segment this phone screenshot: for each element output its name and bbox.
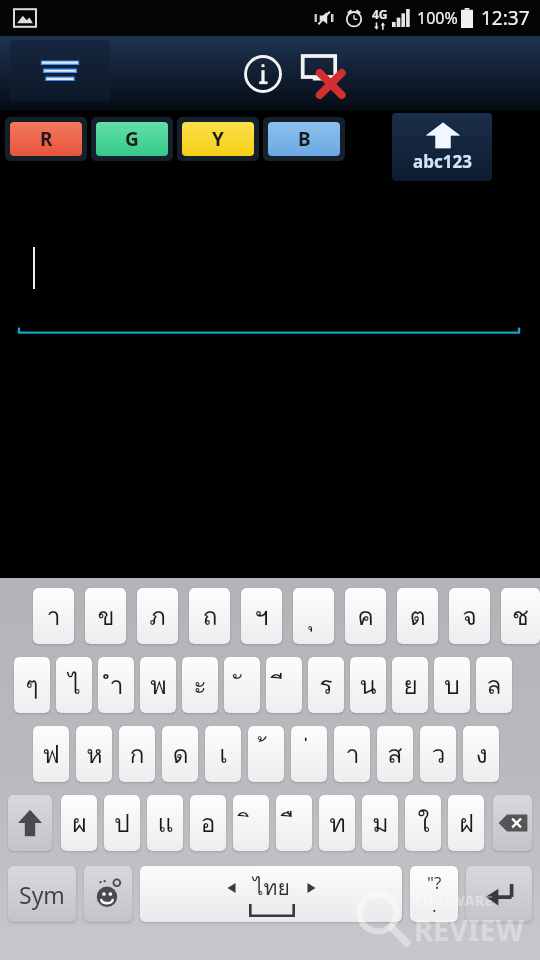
staticText: 12:37 [481, 5, 530, 31]
staticText: ป [114, 803, 130, 843]
staticText: ฝ [459, 803, 474, 843]
button[interactable]: ้ [248, 726, 284, 782]
staticText: ไทย [253, 871, 290, 904]
staticText: า [46, 596, 61, 636]
staticText: ใ [417, 803, 430, 843]
button[interactable]: อ [190, 795, 226, 851]
staticText: พ [150, 665, 167, 705]
button[interactable]: ย [392, 657, 428, 713]
button[interactable]: ฯ [241, 588, 282, 644]
button[interactable]: น [350, 657, 386, 713]
staticText: ำ [109, 665, 124, 705]
button[interactable]: B [263, 117, 345, 161]
staticText: ฟ [42, 734, 60, 774]
staticText: ล [486, 665, 502, 705]
button[interactable]: ิ [233, 795, 269, 851]
staticText: G [125, 126, 139, 152]
staticText: แ [157, 803, 174, 843]
button[interactable]: พ [140, 657, 176, 713]
staticText: Sym [19, 879, 65, 910]
staticText: "? [427, 871, 442, 894]
staticText: ค [357, 596, 374, 636]
button[interactable]: ว [420, 726, 456, 782]
button[interactable]: ใ [405, 795, 441, 851]
staticText: ะ [193, 665, 207, 705]
button[interactable]: R [5, 117, 87, 161]
button[interactable]: abc123 [392, 113, 492, 181]
staticText: ๆ [25, 665, 39, 705]
button[interactable]: ๆ [14, 657, 50, 713]
staticText: ฯ [254, 596, 269, 636]
staticText: THAIWARE [414, 890, 493, 910]
button[interactable]: ก [119, 726, 155, 782]
button[interactable]: Sym [8, 866, 76, 922]
staticText: . [432, 894, 437, 917]
button[interactable]: Menu [10, 40, 110, 101]
staticText: ย [403, 665, 418, 705]
button[interactable]: ห [76, 726, 112, 782]
staticText: ห [86, 734, 103, 774]
staticText: ด [172, 734, 189, 774]
staticText: เ [219, 734, 228, 774]
button[interactable]: ช [501, 588, 540, 644]
button[interactable]: บ [434, 657, 470, 713]
button[interactable]: ท [319, 795, 355, 851]
staticText: อ [200, 803, 216, 843]
staticText: ส [387, 734, 403, 774]
staticText: ถ [202, 596, 218, 636]
button[interactable]: ่ [291, 726, 327, 782]
button[interactable]: ด [162, 726, 198, 782]
button[interactable]: ะ [182, 657, 218, 713]
button[interactable]: ื [276, 795, 312, 851]
button[interactable]: ส [377, 726, 413, 782]
staticText: ไ [68, 665, 81, 705]
staticText: ข [97, 596, 115, 636]
button[interactable]: า [33, 588, 74, 644]
staticText: ร [319, 665, 333, 705]
button[interactable]: ต [397, 588, 438, 644]
button[interactable]: Emoji and settings [84, 866, 132, 922]
button[interactable]: ุ [293, 588, 334, 644]
button[interactable]: Enter [466, 866, 532, 922]
button[interactable]: Shift [8, 795, 52, 851]
button[interactable]: Info [240, 51, 286, 97]
staticText: ม [372, 803, 389, 843]
button[interactable]: ร [308, 657, 344, 713]
button[interactable]: ข [85, 588, 126, 644]
staticText: ก [129, 734, 145, 774]
button[interactable]: ฟ [33, 726, 69, 782]
button[interactable]: ผ [61, 795, 97, 851]
button[interactable]: ถ [189, 588, 230, 644]
button[interactable]: Punctuation [410, 866, 458, 922]
button[interactable]: ป [104, 795, 140, 851]
staticText: ช [512, 596, 529, 636]
button[interactable]: ไทย [140, 866, 402, 922]
staticText: Y [212, 126, 224, 152]
button[interactable]: Delete [493, 795, 532, 851]
button[interactable]: ล [476, 657, 512, 713]
button[interactable]: เ [205, 726, 241, 782]
button[interactable]: ค [345, 588, 386, 644]
button[interactable]: ั [224, 657, 260, 713]
button[interactable]: ฝ [448, 795, 484, 851]
staticText: ต [409, 596, 426, 636]
staticText: abc123 [413, 150, 472, 173]
button[interactable]: ภ [137, 588, 178, 644]
button[interactable]: Screen mirroring off [296, 50, 352, 100]
button[interactable]: ง [463, 726, 499, 782]
staticText: B [298, 126, 311, 152]
button[interactable]: G [91, 117, 173, 161]
button[interactable]: ำ [98, 657, 134, 713]
staticText: จ [462, 596, 477, 636]
button[interactable]: Y [177, 117, 259, 161]
button[interactable]: ม [362, 795, 398, 851]
staticText: บ [444, 665, 460, 705]
staticText: า [345, 734, 360, 774]
button[interactable]: ไ [56, 657, 92, 713]
button[interactable]: จ [449, 588, 490, 644]
staticText: ว [431, 734, 446, 774]
staticText: น [359, 665, 377, 705]
button[interactable]: า [334, 726, 370, 782]
button[interactable]: ี [266, 657, 302, 713]
button[interactable]: แ [147, 795, 183, 851]
